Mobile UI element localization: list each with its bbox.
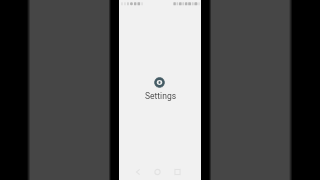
button[interactable]: Settings <box>139 74 181 101</box>
staticText: Settings <box>145 91 177 101</box>
button[interactable]: Home <box>150 166 164 178</box>
button[interactable]: Recents <box>170 166 184 178</box>
